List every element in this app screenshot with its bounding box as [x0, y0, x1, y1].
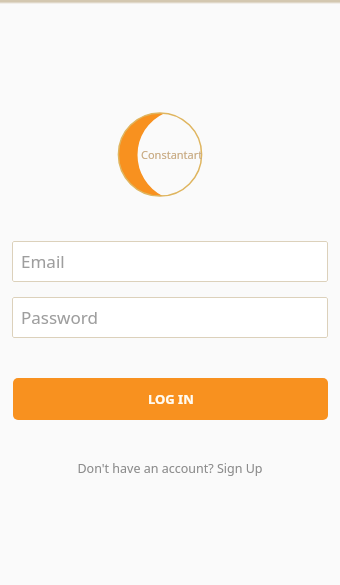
- staticText: Constantart: [141, 147, 203, 162]
- button[interactable]: Password: [12, 297, 328, 338]
- staticText: Email: [21, 250, 65, 273]
- button[interactable]: Don't have an account? Sign Up: [69, 456, 271, 481]
- staticText: Password: [21, 306, 98, 329]
- button[interactable]: LOG IN: [13, 378, 328, 420]
- button[interactable]: Email: [12, 241, 328, 282]
- staticText: LOG IN: [148, 390, 194, 408]
